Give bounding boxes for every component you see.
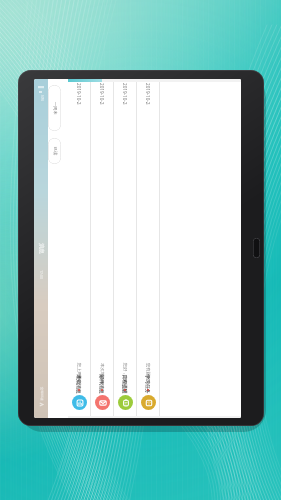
staticText: 邮件消息 xyxy=(99,374,105,394)
staticText: 一周未读 xyxy=(51,101,57,114)
staticText: 您上周的考勤已出，请及时核对并确认相关数据！ xyxy=(76,362,81,384)
staticText: 您好，您有新的日程待处理事项，请点击进入查看详情！ xyxy=(122,362,127,384)
button[interactable]: 2019-10-28 17:00 xyxy=(137,82,159,418)
staticText: 通知消息 xyxy=(76,374,82,394)
staticText: 日程提醒 xyxy=(122,374,128,394)
staticText: 2019-10-28 17:00 xyxy=(76,83,82,105)
other: 通知消息 xyxy=(72,395,87,410)
staticText: 消息 xyxy=(38,243,45,254)
staticText: 全部已读 xyxy=(38,386,43,400)
button[interactable]: 2019-10-28 17:00 xyxy=(68,82,90,418)
button[interactable]: 已读 xyxy=(48,138,61,164)
staticText: 50% xyxy=(39,94,43,101)
button[interactable]: 一周未读 xyxy=(48,85,61,131)
staticText: 2019-10-28 17:00 xyxy=(99,83,105,105)
staticText: 学习任务 xyxy=(145,374,151,394)
staticText: 本次培训报名通道已开启，已报名的请留意，培训时间变更！ xyxy=(99,362,104,384)
staticText: 已读 xyxy=(51,146,57,155)
other: 日程提醒 xyxy=(118,395,133,410)
button[interactable]: 2019-10-28 17:00 xyxy=(91,82,113,418)
staticText: 2019-10-28 17:00 xyxy=(145,83,151,105)
staticText: 2019-10-28 17:00 xyxy=(122,83,128,105)
staticText: 您有新的在线学习任务待完成学习，点击进入开始学习课程！ xyxy=(145,362,150,384)
staticText: 17:00 xyxy=(39,270,44,279)
button[interactable]: 2019-10-28 17:00 xyxy=(114,82,136,418)
other: 邮件消息 xyxy=(95,395,110,410)
other: 学习任务 xyxy=(141,395,156,410)
